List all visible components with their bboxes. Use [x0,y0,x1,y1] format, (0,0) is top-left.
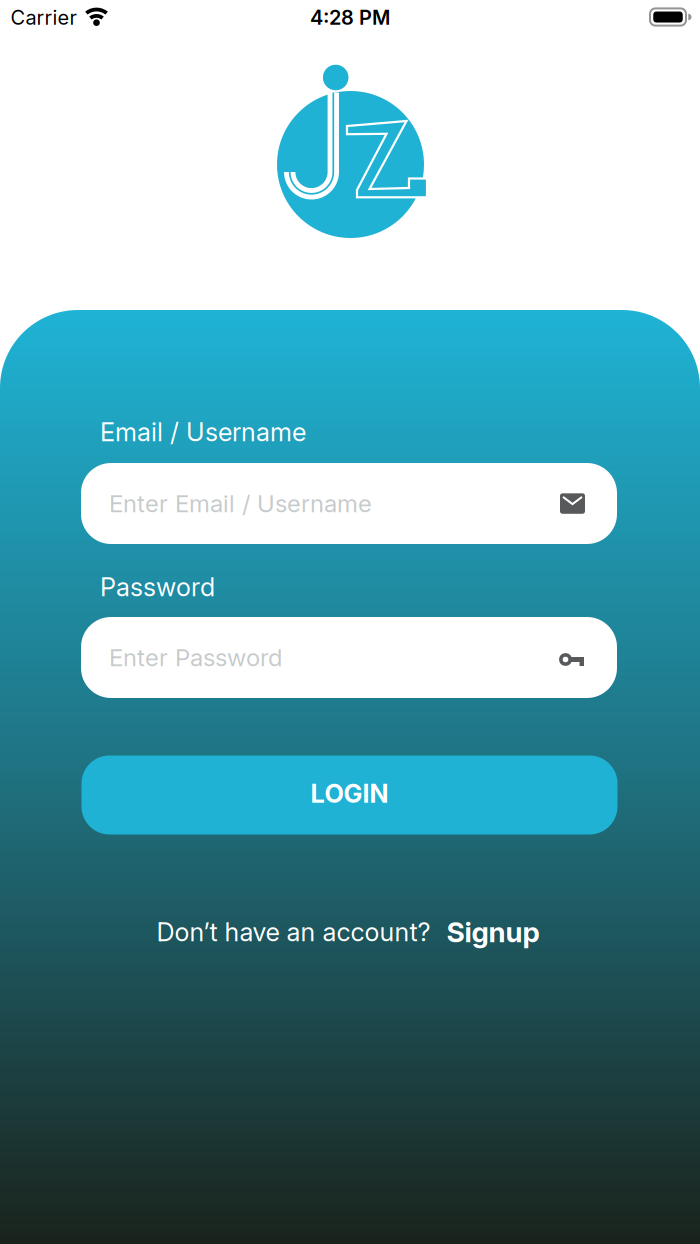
button[interactable]: LOGIN [81,755,617,834]
staticText: Enter Password [109,643,282,672]
staticText: Don’t have an account? [156,917,430,947]
staticText: Carrier [10,6,76,29]
button[interactable]: Signup [446,915,539,948]
staticText: Enter Email / Username [109,489,372,518]
staticText: 4:28 PM [310,6,390,29]
staticText: Email / Username [100,417,306,447]
staticText: LOGIN [310,779,388,808]
button[interactable]: Enter Password [81,617,617,698]
staticText: Password [100,572,215,602]
button[interactable]: Enter Email / Username [81,463,617,544]
staticText: Signup [446,915,539,948]
